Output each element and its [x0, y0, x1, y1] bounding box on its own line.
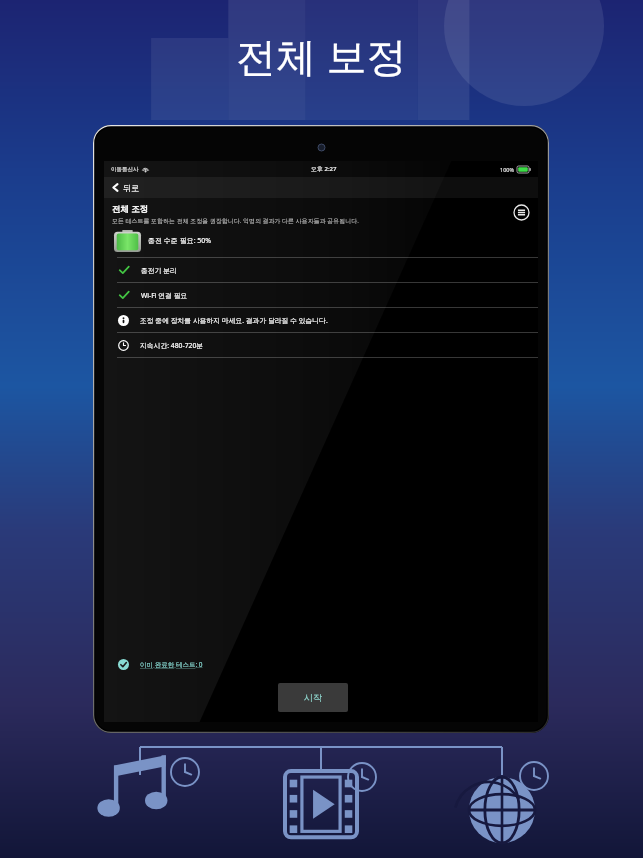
- button[interactable]: 메뉴: [513, 204, 530, 221]
- staticText: 지속시간: 480-720분: [140, 341, 204, 350]
- staticText: 오후 2:27: [311, 165, 337, 173]
- button[interactable]: 조정 중에 장치를 사용하지 마세요. 결과가 달라질 수 있습니다.: [104, 308, 538, 332]
- button[interactable]: 충전 수준 필요: 50%: [104, 225, 538, 257]
- staticText: 모든 테스트를 포함하는 전체 조정을 권장합니다. 익명의 결과가 다른 사용…: [112, 217, 359, 225]
- staticText: 조정 중에 장치를 사용하지 마세요. 결과가 달라질 수 있습니다.: [140, 316, 328, 325]
- staticText: 이미 완료한 테스트: 0: [140, 660, 203, 669]
- staticText: 충전 수준 필요: 50%: [148, 236, 212, 246]
- staticText: 시작: [304, 692, 322, 703]
- staticText: Wi-Fi 연결 필요: [141, 291, 188, 300]
- button[interactable]: Wi-Fi 연결 필요: [104, 283, 538, 307]
- staticText: 이동통신사: [111, 166, 139, 173]
- staticText: 전체 보정: [236, 28, 407, 83]
- staticText: 뒤로: [123, 183, 139, 193]
- button[interactable]: 이미 완료한 테스트: 0: [104, 654, 538, 674]
- button[interactable]: 충전기 분리: [104, 258, 538, 282]
- button[interactable]: 지속시간: 480-720분: [104, 333, 538, 357]
- button[interactable]: 시작: [278, 683, 348, 712]
- staticText: 전체 조정: [112, 203, 149, 215]
- button[interactable]: 뒤로: [104, 177, 538, 198]
- staticText: 100%: [500, 166, 515, 173]
- staticText: 충전기 분리: [141, 266, 177, 275]
